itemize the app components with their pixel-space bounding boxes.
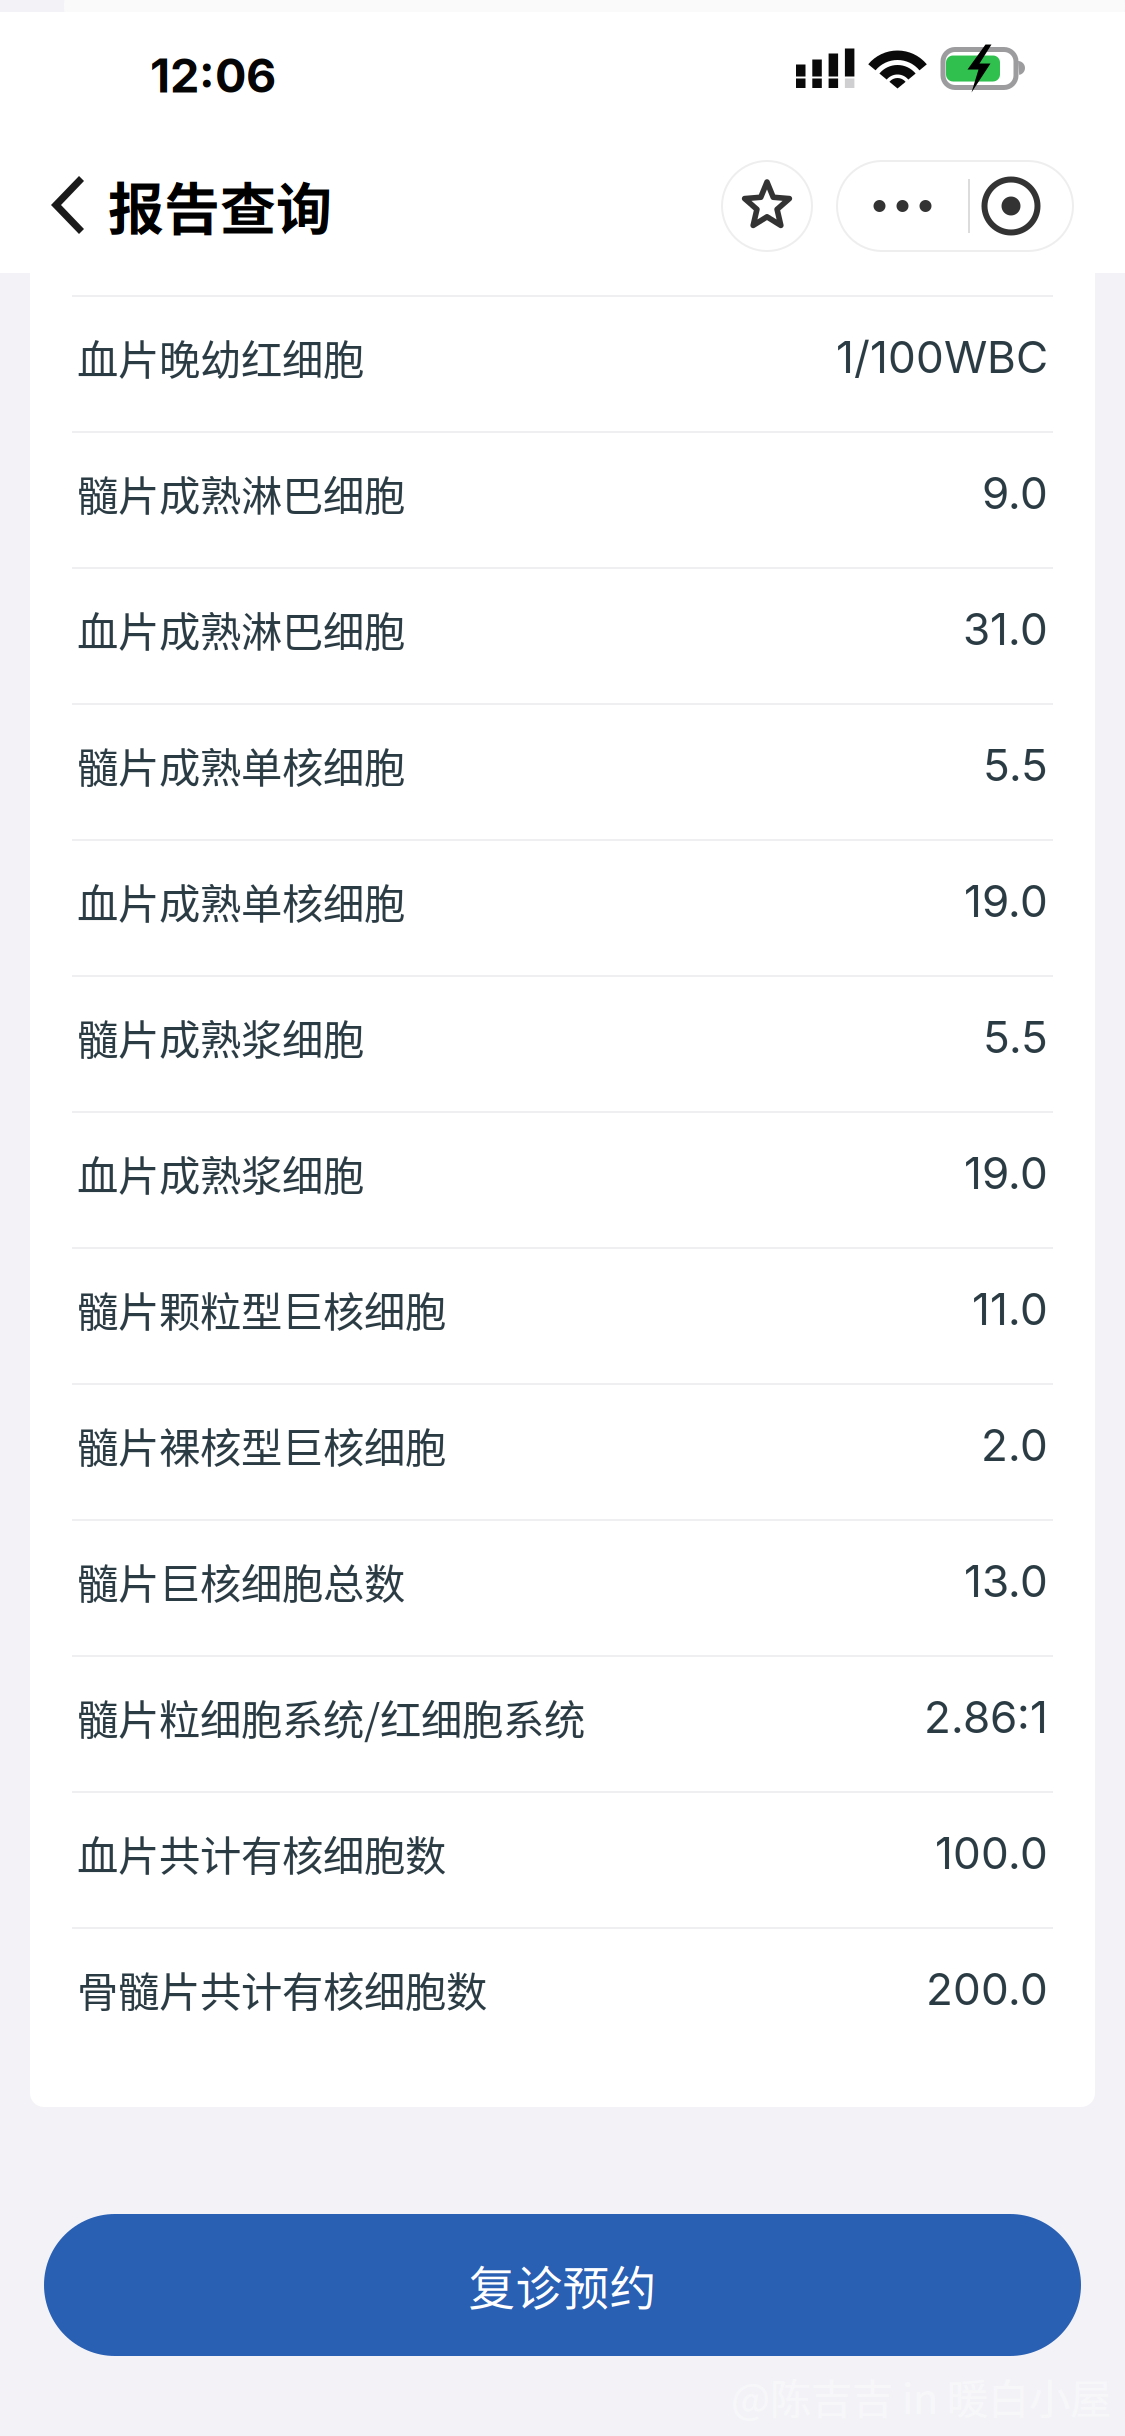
button[interactable]: 更多	[837, 161, 968, 251]
staticText: 100.0	[935, 1826, 1048, 1880]
staticText: 报告查询	[108, 164, 332, 246]
staticText: 2.86:1	[924, 1690, 1048, 1744]
staticText: 12:06	[150, 47, 276, 104]
staticText: 髓片成熟淋巴细胞	[77, 463, 405, 523]
staticText: 髓片粒细胞系统/红细胞系统	[77, 1687, 585, 1747]
staticText: 2.0	[981, 1418, 1048, 1472]
button[interactable]: 报告查询	[0, 125, 356, 294]
staticText: 骨髓片共计有核细胞数	[77, 1959, 487, 2019]
staticText: 复诊预约	[468, 2251, 656, 2319]
staticText: 19.0	[964, 874, 1048, 928]
staticText: 髓片成熟浆细胞	[77, 1007, 364, 1067]
staticText: 19.0	[964, 1146, 1048, 1200]
staticText: 血片成熟浆细胞	[77, 1143, 364, 1203]
button[interactable]: 复诊预约	[44, 2214, 1081, 2356]
staticText: 血片成熟淋巴细胞	[77, 599, 405, 659]
button[interactable]: 收藏	[722, 161, 812, 258]
staticText: 髓片颗粒型巨核细胞	[77, 1279, 446, 1339]
staticText: 200.0	[926, 1962, 1048, 2016]
staticText: 1/100WBC	[836, 330, 1048, 384]
staticText: 髓片裸核型巨核细胞	[77, 1415, 446, 1475]
staticText: 11.0	[972, 1282, 1048, 1336]
staticText: 髓片成熟单核细胞	[77, 735, 405, 795]
staticText: 髓片巨核细胞总数	[77, 1551, 405, 1611]
staticText: 5.5	[983, 738, 1048, 792]
button[interactable]: 关闭	[970, 161, 1073, 251]
staticText: 血片晚幼红细胞	[77, 327, 364, 387]
staticText: 血片共计有核细胞数	[77, 1823, 446, 1883]
staticText: 血片成熟单核细胞	[77, 871, 405, 931]
staticText: 5.5	[983, 1010, 1048, 1064]
staticText: 9.0	[982, 466, 1048, 520]
staticText: 13.0	[964, 1554, 1048, 1608]
staticText: 31.0	[963, 602, 1048, 656]
